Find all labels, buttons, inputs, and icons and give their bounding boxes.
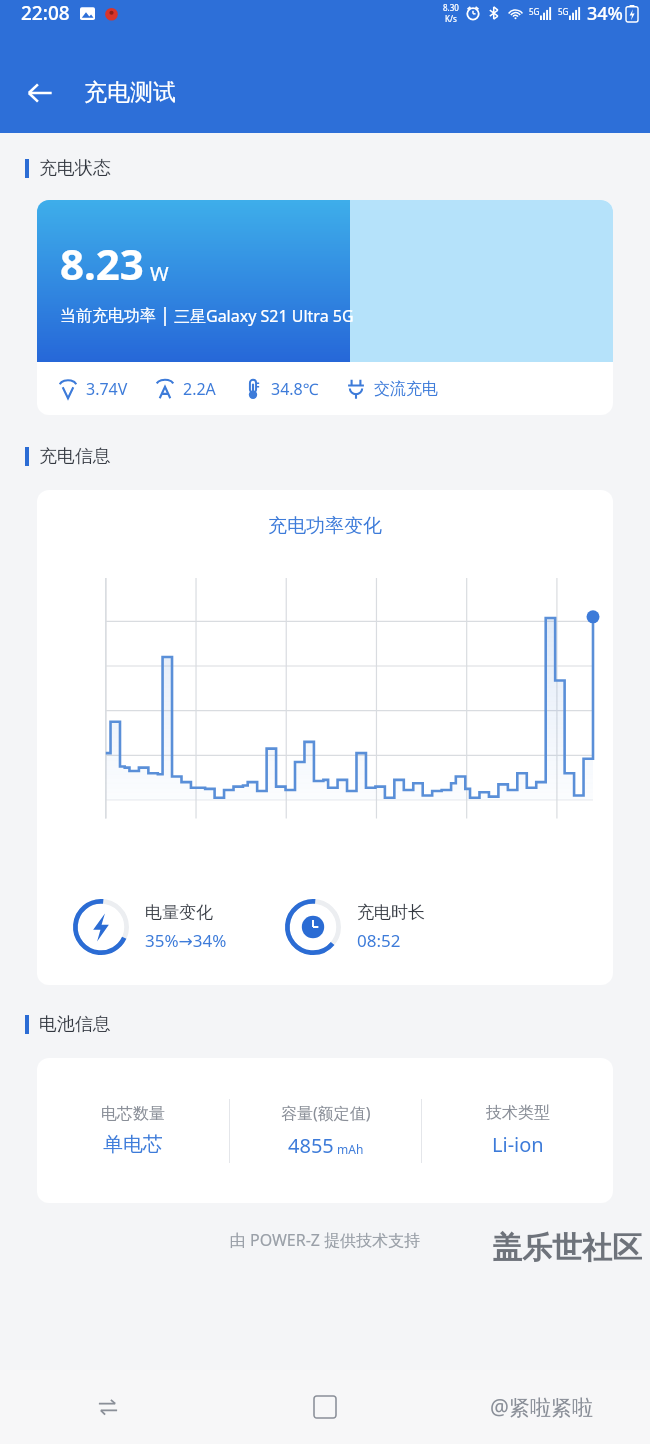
staticText: 8.30 xyxy=(443,2,459,13)
button[interactable]: 电芯数量 xyxy=(37,1058,613,1203)
staticText: 3.74V xyxy=(86,378,128,400)
button[interactable]: Home xyxy=(216,1370,433,1444)
staticText: 三星Galaxy S21 Ultra 5G xyxy=(174,305,354,327)
button[interactable]: 8.23 xyxy=(37,200,613,415)
staticText: 5G xyxy=(558,6,569,17)
staticText: 盖乐世社区 xyxy=(492,1229,642,1267)
staticText: 充电信息 xyxy=(39,445,111,468)
staticText: 22:08 xyxy=(21,0,70,26)
staticText: 充电状态 xyxy=(39,157,111,180)
staticText: K/s xyxy=(445,13,457,24)
staticText: 充电时长 xyxy=(357,902,425,923)
staticText: 34% xyxy=(587,1,623,26)
staticText: 4855 xyxy=(288,1132,334,1159)
staticText: 容量(额定值) xyxy=(281,1102,371,1124)
staticText: 5G xyxy=(529,6,540,17)
staticText: 2.2A xyxy=(183,378,216,400)
staticText: 08:52 xyxy=(357,929,401,952)
button[interactable]: 充电功率变化 xyxy=(37,490,613,985)
staticText: 电芯数量 xyxy=(101,1104,165,1124)
staticText: 34.8℃ xyxy=(271,378,319,400)
staticText: 单电芯 xyxy=(103,1132,163,1157)
staticText: 技术类型 xyxy=(486,1103,550,1123)
staticText: 电量变化 xyxy=(145,902,213,923)
staticText: mAh xyxy=(337,1141,364,1157)
button[interactable]: Recents xyxy=(0,1370,216,1444)
button[interactable]: Back xyxy=(14,67,66,119)
staticText: 充电功率变化 xyxy=(37,514,613,538)
staticText: Li-ion xyxy=(492,1131,544,1158)
staticText: 充电测试 xyxy=(84,78,176,107)
staticText: 8.23 xyxy=(60,235,144,292)
staticText: @紧啦紧啦 xyxy=(490,1393,593,1422)
staticText: 交流充电 xyxy=(374,379,438,399)
staticText: 电池信息 xyxy=(39,1013,111,1036)
staticText: 35%→34% xyxy=(145,929,227,952)
staticText: 当前充电功率 xyxy=(60,306,156,326)
staticText: 由 POWER-Z 提供技术支持 xyxy=(0,1229,650,1251)
staticText: W xyxy=(150,260,169,287)
